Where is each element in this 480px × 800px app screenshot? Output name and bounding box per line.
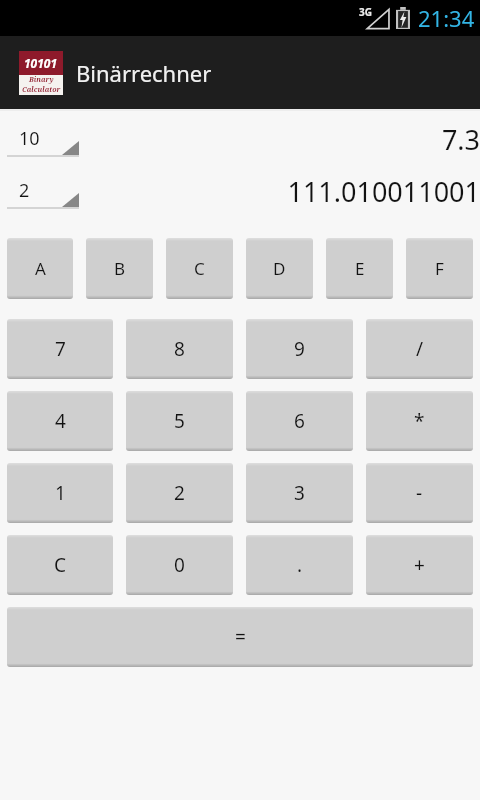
- staticText: E: [355, 257, 365, 280]
- staticText: +: [414, 552, 425, 578]
- staticText: 7.3: [441, 121, 480, 158]
- staticText: Binary: [29, 75, 54, 85]
- button[interactable]: *: [366, 391, 473, 451]
- button[interactable]: -: [366, 463, 473, 523]
- staticText: 2: [174, 480, 185, 506]
- staticText: 5: [174, 408, 185, 434]
- staticText: 0: [174, 552, 185, 578]
- button[interactable]: 6: [246, 391, 353, 451]
- other: Mobile signal 3G: [356, 6, 390, 30]
- staticText: 2: [19, 178, 30, 203]
- staticText: F: [435, 257, 444, 280]
- button[interactable]: 4: [7, 391, 113, 451]
- button[interactable]: 2: [7, 174, 79, 209]
- button[interactable]: 0: [126, 535, 233, 595]
- button[interactable]: 9: [246, 319, 353, 379]
- button[interactable]: 7: [7, 319, 113, 379]
- staticText: 111.010011001: [287, 173, 480, 210]
- other: Battery charging: [396, 7, 410, 29]
- button[interactable]: 10: [7, 122, 79, 157]
- staticText: -: [416, 480, 423, 506]
- button[interactable]: =: [7, 607, 473, 667]
- button[interactable]: C: [7, 535, 113, 595]
- button[interactable]: 8: [126, 319, 233, 379]
- button[interactable]: E: [326, 238, 393, 299]
- staticText: C: [194, 257, 205, 280]
- staticText: 10: [19, 126, 40, 151]
- button[interactable]: D: [246, 238, 313, 299]
- button[interactable]: 3: [246, 463, 353, 523]
- staticText: 7: [55, 336, 66, 362]
- button[interactable]: 1: [7, 463, 113, 523]
- button[interactable]: 2: [126, 463, 233, 523]
- staticText: B: [114, 257, 126, 280]
- staticText: *: [414, 408, 425, 434]
- button[interactable]: +: [366, 535, 473, 595]
- staticText: D: [273, 257, 286, 280]
- button[interactable]: F: [406, 238, 473, 299]
- button[interactable]: /: [366, 319, 473, 379]
- button[interactable]: A: [7, 238, 73, 299]
- staticText: C: [54, 552, 67, 578]
- button[interactable]: B: [86, 238, 153, 299]
- staticText: 1: [55, 480, 66, 506]
- staticText: 21:34: [418, 3, 475, 33]
- staticText: 3G: [359, 5, 372, 19]
- staticText: 4: [55, 408, 66, 434]
- button[interactable]: C: [166, 238, 233, 299]
- staticText: Calculator: [22, 85, 61, 95]
- staticText: 9: [294, 336, 305, 362]
- staticText: .: [297, 552, 303, 578]
- staticText: A: [35, 257, 46, 280]
- staticText: 10101: [24, 55, 58, 71]
- staticText: /: [416, 336, 424, 362]
- button[interactable]: .: [246, 535, 353, 595]
- staticText: Binärrechner: [76, 58, 212, 88]
- staticText: =: [235, 624, 246, 650]
- button[interactable]: 5: [126, 391, 233, 451]
- staticText: 8: [174, 336, 185, 362]
- staticText: 6: [294, 408, 305, 434]
- staticText: 3: [294, 480, 305, 506]
